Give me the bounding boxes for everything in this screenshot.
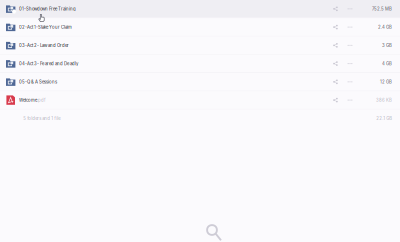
button[interactable]: Search [207, 225, 227, 242]
button[interactable]: 05-Q & A Sessions [0, 73, 400, 91]
staticText: 12 GB [380, 79, 392, 84]
staticText: 2.4 GB [378, 24, 392, 30]
staticText: 4 GB [382, 61, 392, 66]
staticText: 386 KB [376, 97, 392, 103]
staticText: 05-Q & A Sessions [19, 79, 57, 84]
staticText: 02-Act 1-Stake Your Claim [19, 24, 72, 30]
staticText: 22.1 GB [376, 116, 392, 121]
button[interactable]: 01-Showdown Free Training [0, 0, 400, 18]
staticText: 752.5 MB [372, 6, 392, 11]
staticText: 01-Showdown Free Training [19, 6, 76, 11]
staticText: 04-Act 3- Feared and Deadly [19, 61, 78, 66]
staticText: 3 GB [382, 43, 392, 48]
staticText: 03-Act 2- Law and Order [19, 43, 69, 48]
button[interactable]: 03-Act 2- Law and Order [0, 36, 400, 54]
staticText: Welcome [19, 97, 37, 103]
button[interactable]: 04-Act 3- Feared and Deadly [0, 55, 400, 72]
staticText: 5 folders and 1 file [23, 116, 60, 121]
button[interactable]: Welcome [0, 91, 400, 109]
staticText: .pdf [37, 97, 46, 103]
button[interactable]: 02-Act 1-Stake Your Claim [0, 18, 400, 36]
